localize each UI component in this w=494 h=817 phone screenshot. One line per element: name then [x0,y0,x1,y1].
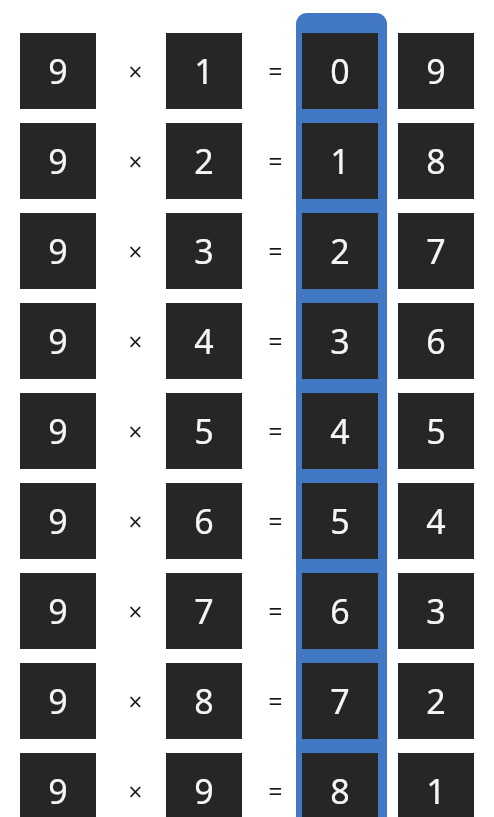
staticText: 7 [330,678,350,724]
button[interactable]: 1 [302,123,378,199]
button[interactable]: 9 [20,123,96,199]
button[interactable]: Multiply [115,231,155,271]
button[interactable]: 9 [20,483,96,559]
staticText: 9 [48,588,68,634]
staticText: 9 [48,768,68,814]
staticText: × [128,414,143,448]
staticText: 8 [330,768,350,814]
staticText: = [268,324,283,358]
button[interactable]: 8 [302,753,378,817]
staticText: = [268,504,283,538]
staticText: = [268,54,283,88]
button[interactable]: 7 [398,213,474,289]
button[interactable]: Multiply [115,321,155,361]
button[interactable]: 9 [166,753,242,817]
button[interactable]: 9 [20,303,96,379]
button[interactable]: Multiply [115,591,155,631]
button[interactable]: 5 [398,393,474,469]
button[interactable]: 4 [166,303,242,379]
button[interactable]: 9 [20,33,96,109]
staticText: 9 [48,48,68,94]
staticText: 6 [426,318,446,364]
button[interactable]: Multiply [115,681,155,721]
staticText: × [128,234,143,268]
staticText: 3 [426,588,446,634]
staticText: 2 [426,678,446,724]
button[interactable]: 6 [398,303,474,379]
button[interactable]: 7 [302,663,378,739]
button[interactable]: 8 [398,123,474,199]
button[interactable]: 4 [302,393,378,469]
staticText: 5 [194,408,214,454]
button[interactable]: Equals [255,501,295,541]
button[interactable]: 1 [166,33,242,109]
button[interactable]: Equals [255,51,295,91]
button[interactable]: Equals [255,681,295,721]
button[interactable]: 8 [166,663,242,739]
button[interactable]: 3 [302,303,378,379]
button[interactable]: Equals [255,141,295,181]
button[interactable]: 9 [20,213,96,289]
staticText: 3 [194,228,214,274]
button[interactable]: 6 [302,573,378,649]
button[interactable]: 9 [20,753,96,817]
staticText: × [128,54,143,88]
staticText: = [268,594,283,628]
button[interactable]: 3 [166,213,242,289]
other: Tens digit column [296,13,387,817]
button[interactable]: 2 [398,663,474,739]
staticText: 9 [48,228,68,274]
button[interactable]: Equals [255,321,295,361]
button[interactable]: 5 [166,393,242,469]
button[interactable]: 3 [398,573,474,649]
button[interactable]: 2 [166,123,242,199]
button[interactable]: 9 [20,393,96,469]
button[interactable]: 9 [20,573,96,649]
staticText: 5 [330,498,350,544]
button[interactable]: 9 [398,33,474,109]
staticText: 2 [194,138,214,184]
staticText: = [268,684,283,718]
button[interactable]: Multiply [115,51,155,91]
staticText: 7 [194,588,214,634]
button[interactable]: 9 [20,663,96,739]
staticText: 8 [194,678,214,724]
button[interactable]: 2 [302,213,378,289]
staticText: 6 [194,498,214,544]
staticText: 1 [194,48,214,94]
staticText: 5 [426,408,446,454]
staticText: 1 [330,138,350,184]
staticText: 9 [48,498,68,544]
button[interactable]: 1 [398,753,474,817]
staticText: = [268,774,283,808]
staticText: 6 [330,588,350,634]
staticText: = [268,414,283,448]
staticText: 9 [426,48,446,94]
button[interactable]: 7 [166,573,242,649]
button[interactable]: Multiply [115,501,155,541]
staticText: = [268,234,283,268]
staticText: × [128,144,143,178]
staticText: 9 [48,678,68,724]
button[interactable]: Multiply [115,141,155,181]
button[interactable]: 5 [302,483,378,559]
button[interactable]: Equals [255,771,295,811]
button[interactable]: Equals [255,411,295,451]
staticText: 2 [330,228,350,274]
staticText: × [128,324,143,358]
button[interactable]: Multiply [115,771,155,811]
button[interactable]: Equals [255,231,295,271]
staticText: × [128,594,143,628]
staticText: 4 [194,318,214,364]
button[interactable]: Multiply [115,411,155,451]
button[interactable]: 0 [302,33,378,109]
button[interactable]: 6 [166,483,242,559]
staticText: 9 [48,138,68,184]
button[interactable]: Equals [255,591,295,631]
staticText: 9 [194,768,214,814]
staticText: 0 [330,48,350,94]
staticText: 7 [426,228,446,274]
staticText: 8 [426,138,446,184]
staticText: × [128,504,143,538]
button[interactable]: 4 [398,483,474,559]
